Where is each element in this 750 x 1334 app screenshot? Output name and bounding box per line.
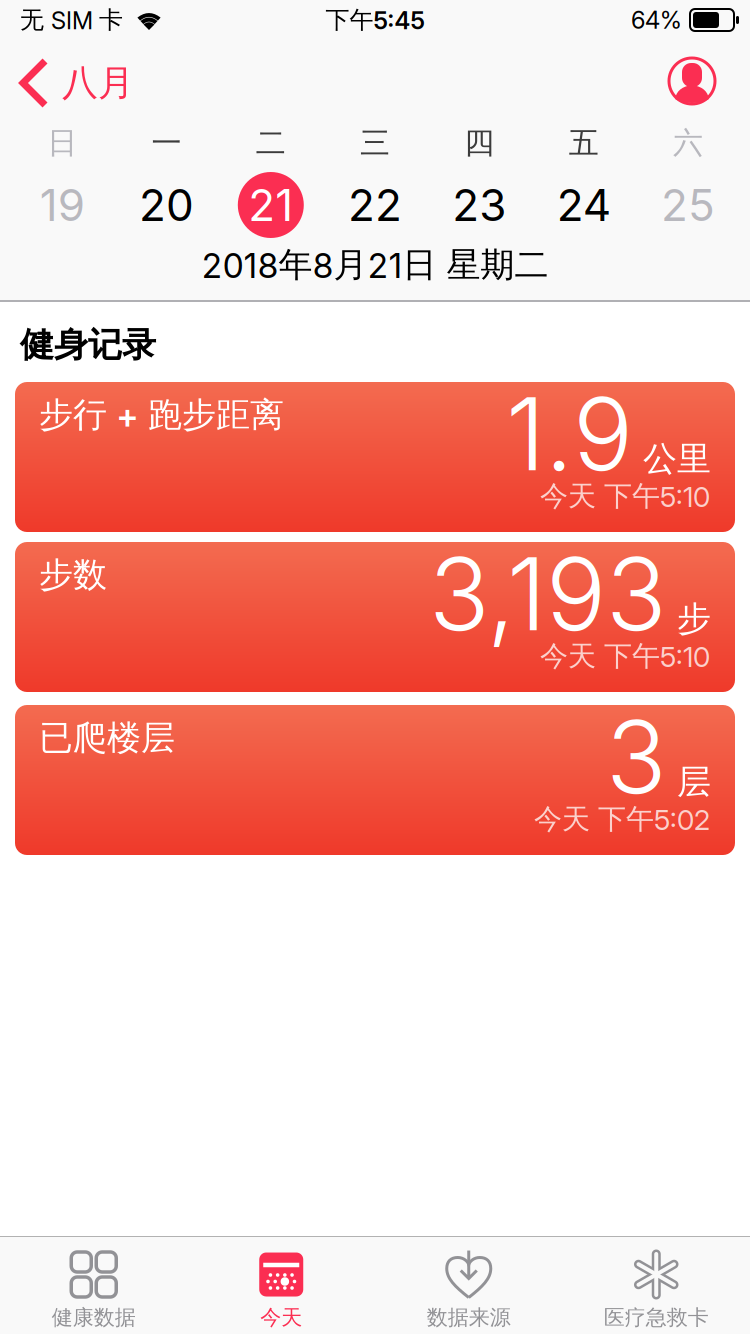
staticText: 数据来源	[427, 1304, 511, 1330]
staticText: 步	[677, 598, 711, 640]
staticText: 健康数据	[52, 1304, 136, 1330]
button[interactable]: 医疗急救卡	[562, 1237, 750, 1333]
staticText: 二	[256, 125, 286, 161]
staticText: 今天 下午5:10	[540, 639, 710, 673]
button[interactable]: 24	[531, 175, 636, 235]
button[interactable]: 步数	[15, 542, 735, 692]
staticText: 日	[47, 125, 77, 161]
staticText: 步行 + 跑步距离	[39, 394, 284, 436]
button[interactable]	[668, 57, 716, 105]
staticText: 步数	[39, 554, 107, 596]
staticText: 3,193	[429, 535, 667, 653]
staticText: 今天 下午5:10	[540, 479, 710, 513]
button[interactable]: 25	[636, 175, 740, 235]
staticText: 2018年8月21日 星期二	[201, 244, 548, 286]
staticText: 1.9	[506, 375, 633, 493]
button[interactable]: 数据来源	[375, 1237, 562, 1333]
staticText: 三	[360, 125, 390, 161]
staticText: 健身记录	[20, 324, 156, 366]
staticText: 25	[661, 179, 715, 231]
staticText: 四	[464, 125, 494, 161]
staticText: 一	[151, 125, 181, 161]
button[interactable]: 八月	[0, 40, 134, 106]
staticText: 六	[673, 125, 703, 161]
staticText: 无 SIM 卡	[20, 5, 123, 35]
button[interactable]: 23	[427, 175, 531, 235]
staticText: 公里	[643, 438, 711, 480]
staticText: 23	[452, 179, 506, 231]
staticText: 3	[606, 698, 667, 816]
staticText: 21	[248, 179, 293, 231]
staticText: 已爬楼层	[39, 717, 175, 759]
staticText: 今天	[260, 1304, 302, 1330]
button[interactable]: 健康数据	[0, 1237, 187, 1333]
staticText: 今天 下午5:02	[534, 802, 710, 836]
button[interactable]: 21	[219, 175, 323, 235]
staticText: 19	[40, 179, 85, 231]
button[interactable]: 已爬楼层	[15, 705, 735, 855]
staticText: 22	[348, 179, 402, 231]
button[interactable]: 22	[323, 175, 427, 235]
button[interactable]: 今天	[187, 1237, 375, 1333]
staticText: 层	[677, 761, 711, 803]
staticText: 下午5:45	[325, 5, 424, 35]
button[interactable]: 19	[10, 175, 114, 235]
staticText: 八月	[62, 61, 134, 105]
staticText: 五	[569, 125, 599, 161]
staticText: 医疗急救卡	[604, 1304, 709, 1330]
button[interactable]: 步行 + 跑步距离	[15, 382, 735, 532]
staticText: 20	[139, 179, 194, 231]
staticText: 24	[557, 179, 611, 231]
button[interactable]: 20	[114, 175, 219, 235]
staticText: 64%	[631, 6, 682, 34]
